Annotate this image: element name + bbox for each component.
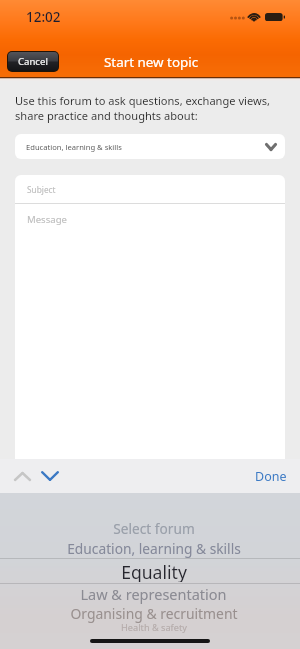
button[interactable]: Done xyxy=(241,459,300,493)
staticText: Select forum xyxy=(113,519,195,538)
button[interactable]: Next field xyxy=(35,459,64,493)
button[interactable]: Subject xyxy=(15,175,285,203)
staticText: share practice and thoughts about: xyxy=(15,108,198,123)
button[interactable]: Law & representation xyxy=(7,583,300,605)
button[interactable]: Health & safety xyxy=(7,616,300,638)
staticText: Equality xyxy=(121,560,187,582)
button[interactable]: Select forum xyxy=(7,517,300,539)
staticText: Organising & recruitment xyxy=(70,604,238,623)
staticText: Use this forum to ask questions, exchang… xyxy=(15,93,270,108)
button[interactable]: Education, learning & skills xyxy=(7,537,300,559)
staticText: Law & representation xyxy=(80,584,227,604)
button[interactable]: Cancel xyxy=(8,52,58,71)
staticText: Health & safety xyxy=(121,621,187,634)
staticText: 12:02 xyxy=(26,8,61,26)
staticText: Cancel xyxy=(18,55,48,68)
button[interactable]: Organising & recruitment xyxy=(7,602,300,624)
button[interactable]: Previous field xyxy=(8,459,36,493)
button[interactable]: Equality xyxy=(7,560,300,582)
staticText: Education, learning & skills xyxy=(26,142,122,152)
staticText: Education, learning & skills xyxy=(67,539,241,558)
staticText: Message xyxy=(27,213,67,226)
staticText: Done xyxy=(255,468,287,485)
button[interactable]: Education, learning & skills xyxy=(15,134,285,159)
staticText: Subject xyxy=(27,184,56,195)
staticText: Start new topic xyxy=(104,53,199,71)
